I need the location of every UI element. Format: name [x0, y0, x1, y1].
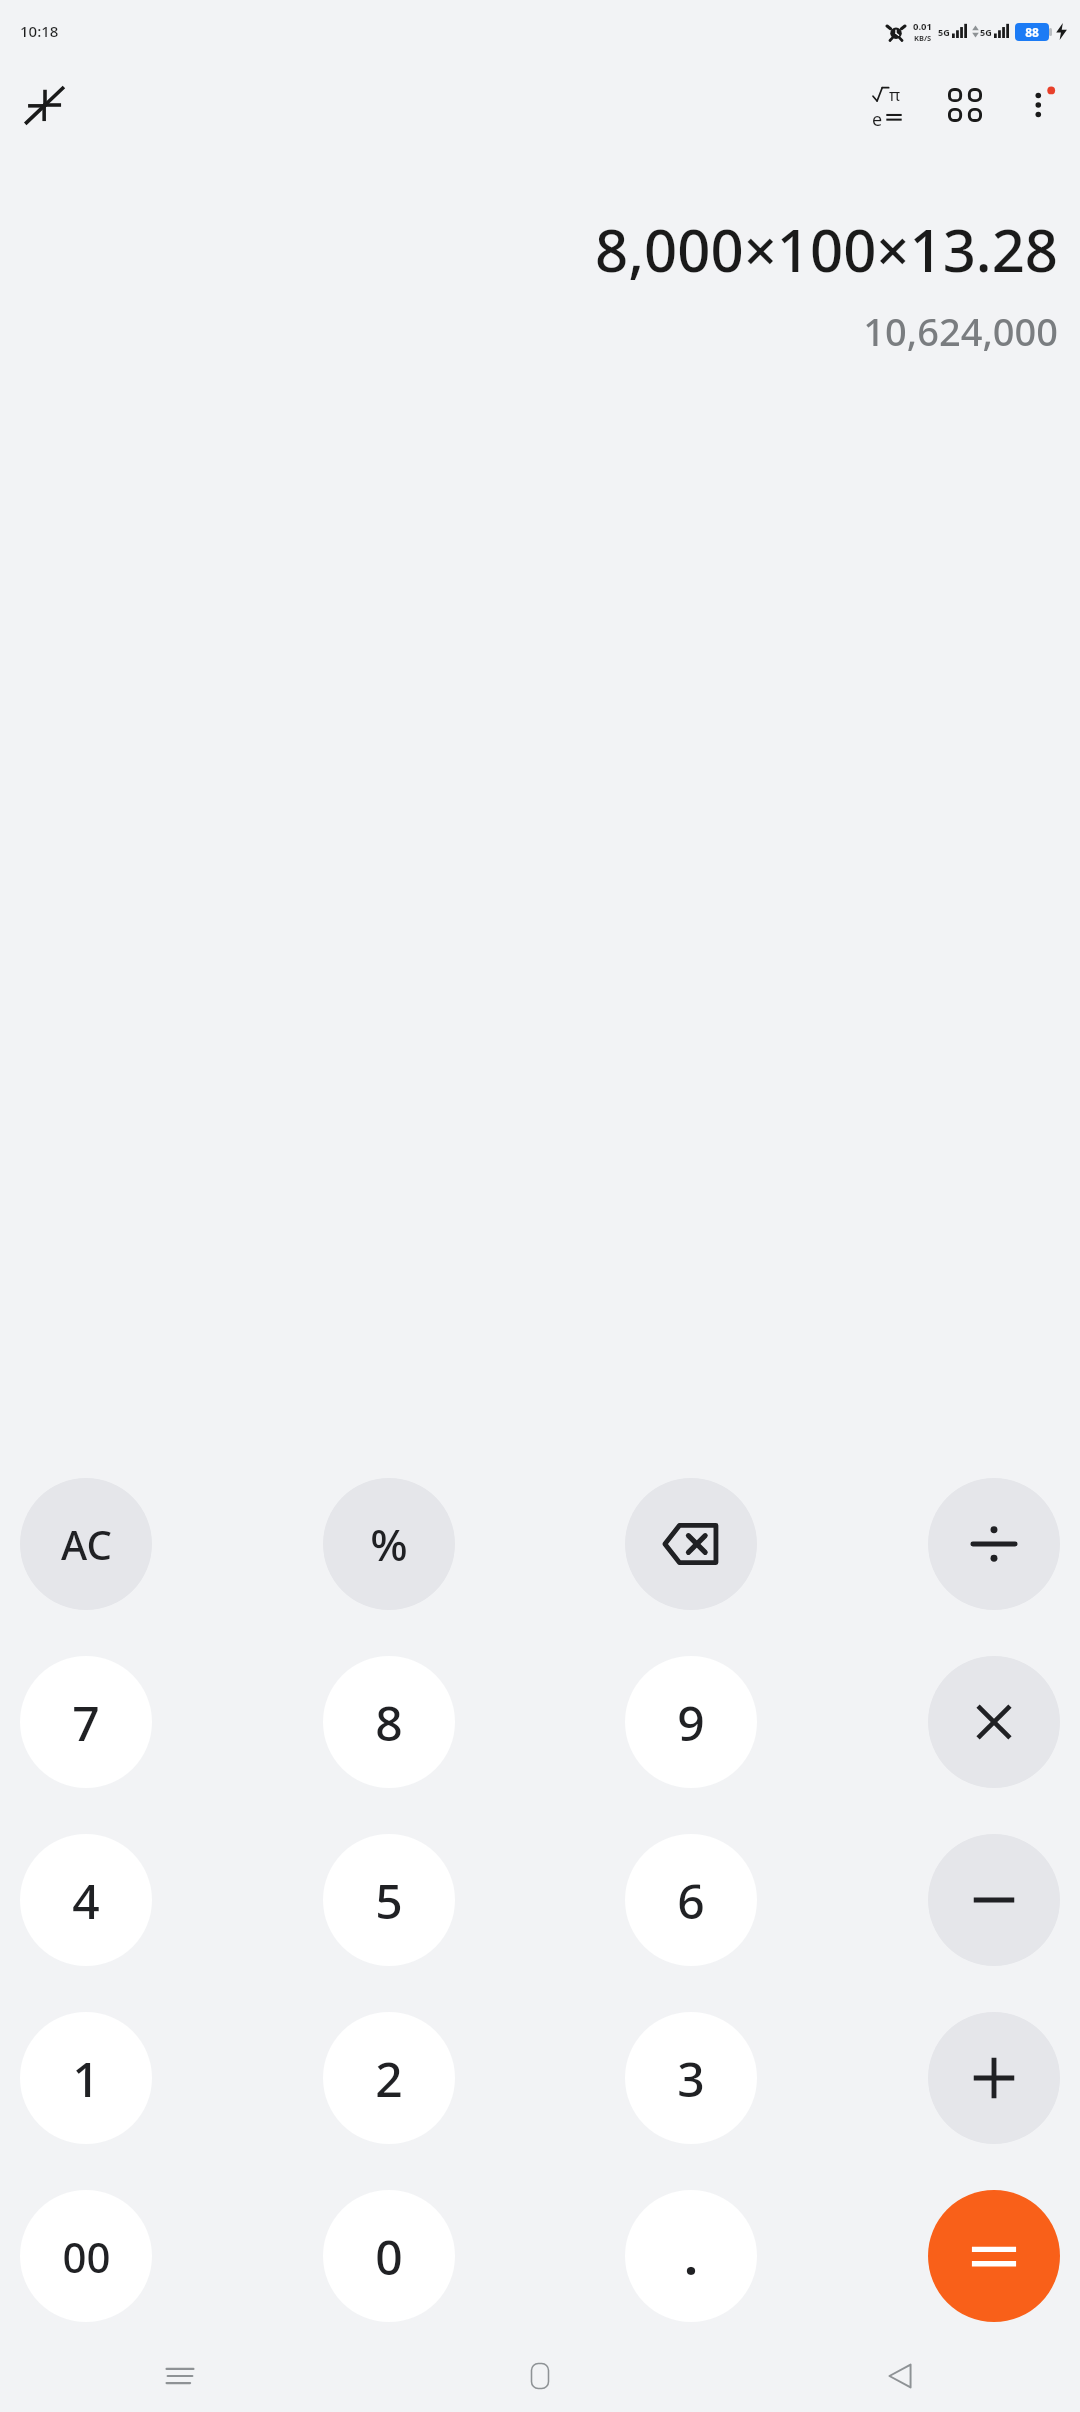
button[interactable]: 3: [625, 2012, 757, 2144]
staticText: e: [872, 107, 883, 127]
staticText: 88: [1025, 24, 1039, 40]
button[interactable]: 1: [20, 2012, 152, 2144]
button[interactable]: 7: [20, 1656, 152, 1788]
button[interactable]: Recent apps: [144, 2340, 216, 2412]
button[interactable]: Scientific calculator: [854, 72, 920, 138]
button[interactable]: 2: [323, 2012, 455, 2144]
staticText: 0.01: [913, 20, 932, 33]
staticText: 2: [375, 2046, 403, 2111]
button[interactable]: 8: [323, 1656, 455, 1788]
button[interactable]: .: [625, 2190, 757, 2322]
staticText: 3: [677, 2046, 705, 2111]
button[interactable]: 6: [625, 1834, 757, 1966]
staticText: 10,624,000: [863, 305, 1058, 357]
button[interactable]: Equals: [928, 2190, 1060, 2322]
button[interactable]: AC: [20, 1478, 152, 1610]
button[interactable]: More options: [1010, 74, 1072, 136]
button[interactable]: Back: [864, 2340, 936, 2412]
staticText: 5G: [938, 26, 950, 38]
button[interactable]: 9: [625, 1656, 757, 1788]
button[interactable]: Minus: [928, 1834, 1060, 1966]
staticText: AC: [61, 1517, 112, 1571]
staticText: 6: [677, 1868, 705, 1933]
staticText: %: [370, 1514, 408, 1574]
staticText: 00: [62, 2228, 111, 2285]
button[interactable]: Unit converter: [932, 72, 998, 138]
button[interactable]: Divide: [928, 1478, 1060, 1610]
staticText: 1: [72, 2046, 100, 2111]
staticText: 10:18: [20, 21, 59, 41]
staticText: 7: [72, 1690, 100, 1755]
button[interactable]: Home: [504, 2340, 576, 2412]
staticText: 5: [375, 1868, 403, 1933]
staticText: 5G: [980, 26, 992, 38]
button[interactable]: Multiply: [928, 1656, 1060, 1788]
staticText: 8,000×100×13.28: [595, 210, 1058, 289]
button[interactable]: Collapse: [14, 74, 76, 136]
staticText: 0: [375, 2224, 403, 2289]
staticText: .: [684, 2224, 698, 2289]
button[interactable]: Backspace: [625, 1478, 757, 1610]
button[interactable]: 4: [20, 1834, 152, 1966]
button[interactable]: Plus: [928, 2012, 1060, 2144]
staticText: 8: [375, 1690, 403, 1755]
button[interactable]: %: [323, 1478, 455, 1610]
staticText: 9: [677, 1690, 705, 1755]
staticText: KB/S: [914, 33, 932, 43]
button[interactable]: 0: [323, 2190, 455, 2322]
staticText: π: [889, 83, 901, 106]
staticText: 4: [72, 1868, 100, 1933]
button[interactable]: 5: [323, 1834, 455, 1966]
button[interactable]: 00: [20, 2190, 152, 2322]
